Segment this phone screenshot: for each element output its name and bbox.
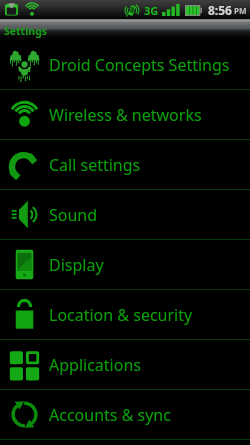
staticText: Sound <box>49 204 98 226</box>
button[interactable]: Location and security <box>0 290 250 340</box>
button[interactable]: Applications <box>0 340 250 390</box>
button[interactable]: Call settings <box>0 140 250 190</box>
staticText: Wireless & networks <box>49 104 202 126</box>
button[interactable]: Droid Concepts Settings <box>0 40 250 90</box>
staticText: 3G <box>144 3 159 18</box>
button[interactable]: Accounts and sync <box>0 390 250 440</box>
button[interactable]: Wireless and networks <box>0 90 250 140</box>
staticText: Droid Concepts Settings <box>49 54 230 76</box>
staticText: Accounts & sync <box>49 404 171 426</box>
staticText: Call settings <box>49 154 141 176</box>
staticText: PM <box>234 5 247 16</box>
staticText: Applications <box>49 354 141 376</box>
button[interactable]: Sound <box>0 190 250 240</box>
staticText: 8:56 <box>208 2 232 18</box>
staticText: Settings <box>4 24 48 38</box>
button[interactable]: Display <box>0 240 250 290</box>
staticText: Location & security <box>49 304 193 326</box>
staticText: Display <box>49 254 104 276</box>
